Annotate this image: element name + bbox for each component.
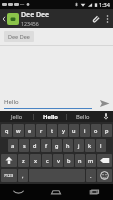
staticText: n — [78, 157, 82, 165]
staticText: . — [90, 172, 92, 180]
staticText: t — [51, 127, 54, 135]
button[interactable]: f — [41, 139, 51, 152]
button[interactable]: More options — [102, 9, 113, 28]
button[interactable]: ?123 — [1, 169, 17, 182]
button[interactable]: h — [63, 139, 73, 152]
staticText: a — [11, 142, 15, 150]
staticText: 1:34 — [99, 1, 110, 8]
staticText: k — [88, 142, 92, 150]
button[interactable]: Backspace — [97, 154, 112, 167]
button[interactable]: Attach — [88, 9, 102, 28]
button[interactable]: v — [53, 154, 63, 167]
button[interactable]: i — [80, 124, 90, 137]
staticText: i — [84, 127, 86, 135]
button[interactable]: Back — [0, 184, 37, 200]
staticText: e — [28, 127, 32, 135]
button[interactable]: u — [69, 124, 79, 137]
staticText: x — [34, 157, 38, 165]
staticText: Dee Dee — [21, 10, 50, 20]
staticText: w — [16, 127, 21, 135]
staticText: , — [22, 172, 24, 180]
button[interactable]: z — [18, 154, 29, 167]
button[interactable]: l — [96, 139, 106, 152]
button[interactable]: j — [74, 139, 84, 152]
button[interactable]: a — [8, 139, 18, 152]
button[interactable]: p — [102, 124, 112, 137]
button[interactable]: Home — [37, 184, 75, 200]
staticText: m — [88, 157, 94, 165]
button[interactable]: Jello — [0, 111, 33, 122]
staticText: Jello — [11, 113, 23, 121]
button[interactable]: Dee Dee — [4, 31, 34, 42]
staticText: q — [5, 127, 9, 135]
button[interactable]: Hello — [34, 111, 66, 122]
staticText: h — [66, 142, 70, 150]
staticText: p — [105, 127, 109, 135]
staticText: y — [62, 127, 65, 135]
staticText: d — [33, 142, 37, 150]
staticText: 123456 — [21, 20, 39, 27]
button[interactable]: x — [30, 154, 41, 167]
button[interactable]: n — [75, 154, 85, 167]
button[interactable]: Voice input — [99, 111, 113, 122]
button[interactable]: Emoji — [97, 169, 112, 182]
staticText: Hello — [4, 98, 19, 106]
button[interactable]: t — [47, 124, 57, 137]
staticText: b — [67, 157, 71, 165]
button[interactable]: Navigate up — [0, 13, 21, 25]
button[interactable]: y — [58, 124, 68, 137]
staticText: c — [46, 157, 49, 165]
button[interactable]: w — [13, 124, 24, 137]
button[interactable]: c — [42, 154, 52, 167]
button[interactable]: g — [52, 139, 62, 152]
staticText: r — [40, 127, 43, 135]
staticText: v — [57, 157, 60, 165]
staticText: o — [94, 127, 98, 135]
button[interactable]: , — [18, 169, 28, 182]
staticText: u — [72, 127, 76, 135]
button[interactable]: q — [1, 124, 12, 137]
staticText: s — [23, 142, 26, 150]
button[interactable]: Recents — [75, 184, 113, 200]
staticText: Dee Dee — [8, 33, 30, 40]
button[interactable]: e — [25, 124, 35, 137]
staticText: Hello — [43, 113, 58, 121]
button[interactable]: Shift — [1, 154, 17, 167]
button[interactable]: m — [86, 154, 96, 167]
button[interactable]: k — [85, 139, 95, 152]
button[interactable]: r — [36, 124, 46, 137]
button[interactable]: s — [19, 139, 29, 152]
button[interactable]: o — [91, 124, 101, 137]
staticText: z — [22, 157, 25, 165]
staticText: l — [100, 142, 102, 150]
staticText: j — [78, 142, 80, 150]
staticText: f — [45, 142, 47, 150]
button[interactable]: b — [64, 154, 74, 167]
button[interactable]: Bello — [67, 111, 99, 122]
button[interactable]: d — [30, 139, 40, 152]
staticText: g — [55, 142, 59, 150]
button[interactable]: . — [86, 169, 96, 182]
button[interactable]: Send — [95, 96, 113, 111]
staticText: Bello — [76, 113, 90, 121]
staticText: ?123 — [4, 173, 14, 179]
